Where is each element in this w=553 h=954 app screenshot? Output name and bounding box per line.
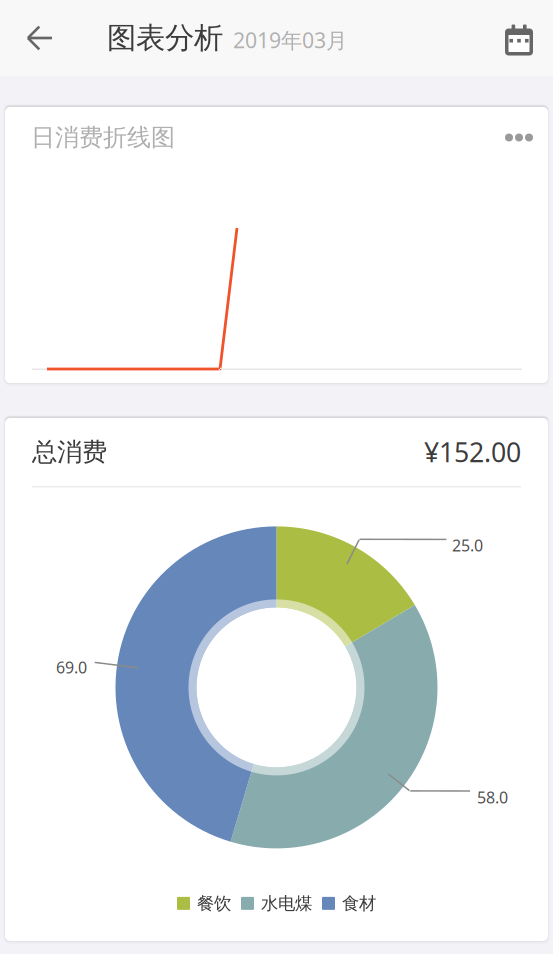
button[interactable]: Back xyxy=(0,0,80,76)
staticText: 图表分析 xyxy=(107,20,223,56)
staticText: 水电煤 xyxy=(261,893,312,914)
staticText: 25.0 xyxy=(452,535,483,556)
staticText: 食材 xyxy=(342,893,376,914)
staticText: 日消费折线图 xyxy=(31,123,175,152)
staticText: 餐饮 xyxy=(197,893,231,914)
staticText: 2019年03月 xyxy=(233,26,347,54)
button[interactable]: Select month xyxy=(485,0,553,76)
button[interactable]: More options xyxy=(473,115,533,159)
staticText: ¥152.00 xyxy=(424,434,521,470)
staticText: 69.0 xyxy=(56,657,87,678)
staticText: 总消费 xyxy=(32,436,107,467)
staticText: 58.0 xyxy=(477,787,508,808)
